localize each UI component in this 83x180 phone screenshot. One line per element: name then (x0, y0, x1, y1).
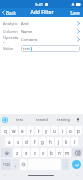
button[interactable]: y (43, 126, 50, 135)
staticText: r (30, 128, 32, 134)
button[interactable]: b (48, 148, 55, 157)
button[interactable]: Shift (1, 148, 12, 157)
button[interactable]: Keyboard settings (2, 117, 8, 123)
button[interactable]: Back (0, 8, 19, 17)
button[interactable]: j (55, 137, 62, 146)
button[interactable]: w (10, 126, 18, 135)
staticText: Value (3, 46, 19, 51)
staticText: test (23, 46, 31, 51)
staticText: y (45, 128, 48, 134)
staticText: Column (3, 29, 19, 34)
staticText: 9:41 (35, 2, 43, 7)
staticText: ?123 (3, 163, 10, 167)
staticText: i (62, 128, 64, 134)
staticText: Back (6, 10, 17, 16)
button[interactable]: o (67, 126, 74, 135)
button[interactable]: ?123 (1, 159, 11, 170)
button[interactable]: q (1, 126, 9, 135)
button[interactable]: m (64, 148, 71, 157)
button[interactable]: Save (67, 8, 83, 17)
button[interactable]: e (19, 126, 26, 135)
staticText: k (65, 139, 68, 145)
button[interactable]: Enter (72, 160, 81, 169)
staticText: , (15, 162, 17, 168)
button[interactable]: n (56, 148, 63, 157)
staticText: q (4, 128, 7, 134)
staticText: t (38, 128, 40, 134)
staticText: j (58, 139, 60, 145)
staticText: Operator (3, 35, 19, 43)
staticText: Name (21, 29, 33, 34)
staticText: w (12, 128, 16, 134)
button[interactable]: t (35, 126, 42, 135)
button[interactable]: x (22, 148, 30, 157)
button[interactable]: a (5, 137, 13, 146)
button[interactable]: tested (31, 114, 53, 125)
button[interactable]: test (21, 45, 80, 52)
button[interactable]: f (31, 137, 38, 146)
staticText: p (77, 128, 80, 134)
staticText: Add Filter (30, 9, 54, 16)
button[interactable]: k (63, 137, 70, 146)
button[interactable]: i (59, 126, 66, 135)
staticText: test (16, 117, 24, 122)
button[interactable]: test (8, 114, 31, 125)
staticText: m (65, 150, 70, 156)
staticText: And (21, 21, 29, 26)
staticText: h (49, 139, 52, 145)
button[interactable]: Operator (0, 35, 83, 43)
staticText: u (53, 128, 56, 134)
staticText: e (21, 128, 24, 134)
button[interactable]: c (31, 148, 39, 157)
button[interactable]: testing (53, 114, 75, 125)
button[interactable]: d (23, 137, 30, 146)
staticText: n (58, 150, 61, 156)
staticText: b (50, 150, 53, 156)
button[interactable]: Backspace (72, 148, 82, 157)
button[interactable]: , (12, 159, 19, 170)
staticText: z (16, 150, 19, 156)
button[interactable]: z (13, 148, 21, 157)
staticText: tested (36, 117, 48, 122)
button[interactable]: l (71, 137, 78, 146)
staticText: s (17, 139, 20, 145)
button[interactable]: . (62, 159, 69, 170)
staticText: o (69, 128, 72, 134)
button[interactable]: Analytic (0, 19, 83, 27)
staticText: testing (57, 117, 71, 122)
staticText: Analytic (3, 21, 19, 26)
button[interactable]: u (51, 126, 58, 135)
button[interactable]: r (27, 126, 34, 135)
staticText: g (41, 139, 44, 145)
staticText: v (42, 150, 45, 156)
staticText: Contains (21, 37, 38, 42)
staticText: Save (70, 10, 80, 16)
button[interactable]: Voice input (75, 117, 81, 123)
staticText: f (34, 139, 36, 145)
button[interactable]: Column (0, 27, 83, 35)
button[interactable]: s (14, 137, 22, 146)
button[interactable]: p (75, 126, 82, 135)
button[interactable]: Emoji (20, 159, 27, 170)
staticText: x (25, 150, 28, 156)
staticText: . (65, 162, 67, 168)
button[interactable]: g (39, 137, 46, 146)
staticText: c (34, 150, 37, 156)
staticText: a (8, 139, 11, 145)
staticText: l (74, 139, 76, 145)
button[interactable]: v (40, 148, 47, 157)
staticText: d (25, 139, 28, 145)
button[interactable]: h (47, 137, 54, 146)
